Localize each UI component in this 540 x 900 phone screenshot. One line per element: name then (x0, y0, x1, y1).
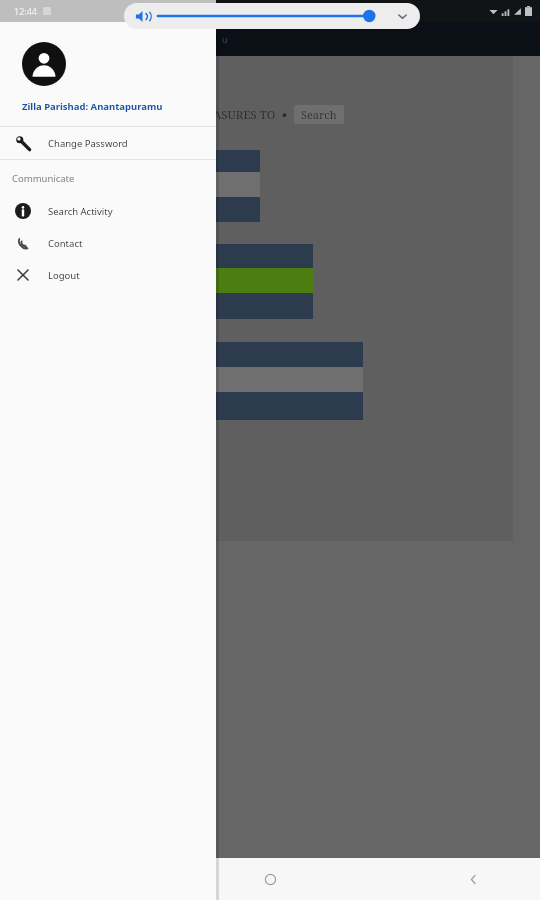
staticText: Search (301, 107, 337, 122)
staticText: Search Activity (48, 205, 113, 218)
staticText: Contact (48, 237, 83, 250)
button[interactable]: Search Activity (0, 195, 216, 227)
staticText: 12:44 (14, 5, 38, 17)
staticText: ctivities (110, 154, 151, 168)
staticText: u (222, 33, 228, 45)
staticText: Change Password (48, 137, 128, 150)
staticText: Communicate (12, 172, 75, 185)
button[interactable]: Contact (0, 227, 216, 259)
button[interactable]: Back (446, 858, 500, 900)
other: Volume (134, 8, 151, 25)
button[interactable]: Home (243, 858, 297, 900)
button[interactable]: Change Password (0, 127, 216, 159)
staticText: SAFETY MEASURES TO (150, 107, 276, 123)
button[interactable]: Search (294, 105, 344, 124)
button[interactable]: Volume (124, 3, 420, 29)
staticText: Zilla Parishad: Anantapuramu (22, 100, 163, 113)
button[interactable]: Logout (0, 259, 216, 291)
staticText: ▪ (282, 111, 287, 119)
staticText: Logout (48, 269, 80, 282)
button[interactable]: Expand volume controls (394, 8, 410, 24)
